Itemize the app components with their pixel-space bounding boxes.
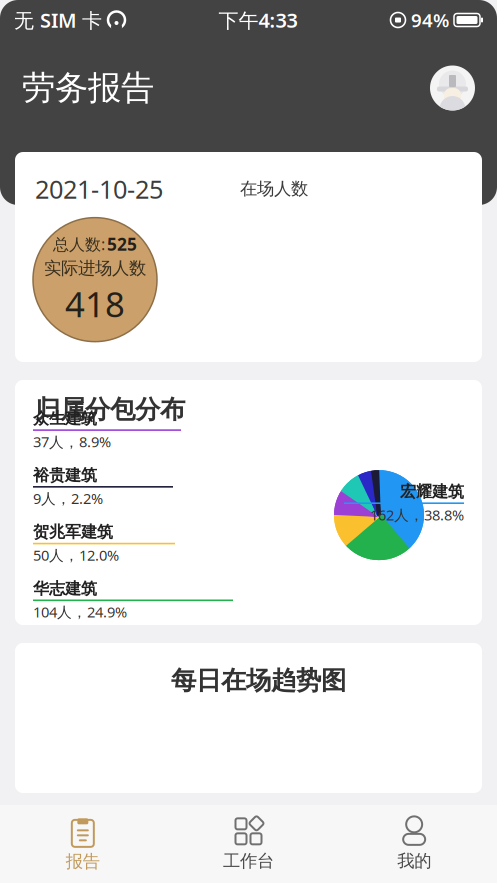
staticText: 94% (411, 8, 449, 32)
staticText: 162人，38.8% (370, 505, 464, 524)
staticText: 总人数: (53, 233, 105, 255)
staticText: 418 (65, 281, 125, 327)
staticText: 宏耀建筑 (400, 482, 464, 501)
staticText: 众生建筑 (33, 409, 97, 428)
staticText: 104人，24.9% (33, 602, 127, 622)
staticText: 实际进场人数 (44, 257, 146, 279)
staticText: 9人，2.2% (33, 489, 103, 508)
button[interactable]: 我的 (331, 807, 497, 881)
staticText: 报告 (66, 851, 100, 872)
staticText: 华志建筑 (33, 579, 97, 598)
staticText: 我的 (397, 850, 431, 872)
staticText: 在场人数 (240, 178, 308, 199)
staticText: 每日在场趋势图 (171, 665, 346, 696)
staticText: 裕贵建筑 (33, 465, 97, 485)
staticText: 37人，8.9% (33, 432, 111, 451)
staticText: 无 SIM 卡 (14, 7, 102, 33)
staticText: 劳务报告 (22, 67, 154, 108)
staticText: 工作台 (223, 850, 274, 872)
button[interactable]: 工作台 (166, 807, 331, 881)
staticText: 50人，12.0% (33, 545, 119, 565)
staticText: 归属分包分布 (35, 394, 185, 425)
button[interactable]: 个人中心 (430, 65, 475, 110)
staticText: 下午4:33 (218, 7, 297, 33)
staticText: 贺兆军建筑 (33, 522, 113, 542)
button[interactable]: 报告 (0, 807, 166, 881)
staticText: 2021-10-25 (35, 172, 163, 206)
staticText: 525 (107, 232, 137, 255)
